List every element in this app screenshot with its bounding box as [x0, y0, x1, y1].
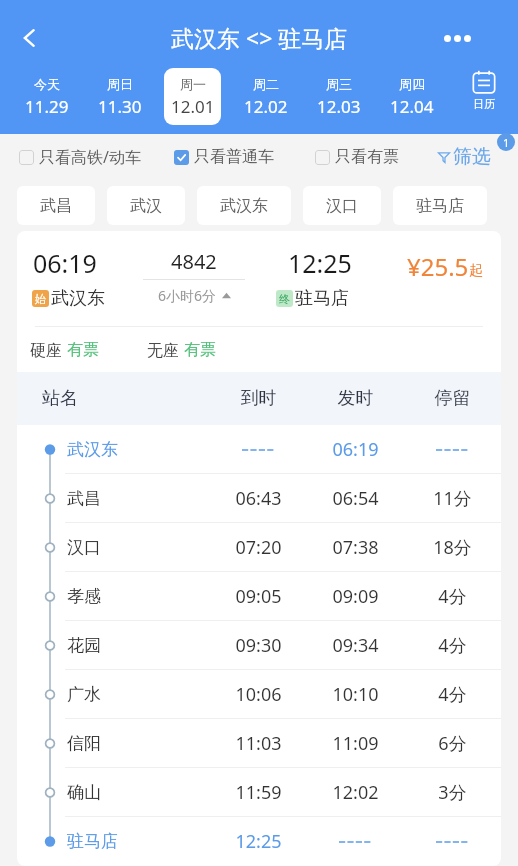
staticText: 06:43 — [210, 486, 307, 511]
staticText: 06:19 — [33, 246, 97, 280]
staticText: 武汉东 — [67, 439, 118, 460]
button[interactable]: 只看有票 — [315, 147, 399, 167]
button[interactable]: 信阳 — [17, 719, 501, 768]
button[interactable]: 只看高铁/动车 — [19, 146, 141, 168]
staticText: 06:54 — [307, 486, 404, 511]
button[interactable]: 只看普通车 — [174, 147, 274, 167]
staticText: 筛选 — [453, 145, 491, 169]
button[interactable]: 孝感 — [17, 572, 501, 621]
staticText: 4分 — [404, 584, 501, 609]
staticText: 周二 — [253, 76, 279, 92]
staticText: 无座 — [147, 339, 184, 361]
staticText: 信阳 — [67, 733, 101, 754]
button[interactable]: 花园 — [17, 621, 501, 670]
button[interactable]: 汉口 — [17, 523, 501, 572]
staticText: 09:30 — [210, 633, 307, 658]
button[interactable]: 筛选 — [438, 145, 518, 169]
staticText: 4分 — [404, 633, 501, 658]
button[interactable]: Calendar — [454, 61, 514, 119]
button[interactable]: 驻马店 — [17, 817, 501, 866]
staticText: 07:38 — [307, 535, 404, 560]
button[interactable]: 周三 — [310, 68, 367, 125]
staticText: 到时 — [210, 387, 307, 410]
button[interactable]: 汉口 — [303, 186, 381, 225]
button[interactable]: Back — [5, 18, 53, 58]
staticText: 4842 — [171, 248, 217, 275]
staticText: 09:09 — [307, 584, 404, 609]
staticText: 日历 — [473, 97, 495, 111]
staticText: 有票 — [184, 340, 216, 360]
staticText: 09:34 — [307, 633, 404, 658]
staticText: 始 — [35, 292, 46, 306]
staticText: 6分 — [404, 731, 501, 756]
button[interactable]: 确山 — [17, 768, 501, 817]
staticText: 11分 — [404, 486, 501, 511]
staticText: 武汉 — [130, 196, 162, 216]
staticText: 停留 — [404, 387, 501, 410]
button[interactable]: 武昌 — [17, 186, 95, 225]
staticText: 12:25 — [210, 829, 307, 854]
staticText: 驻马店 — [295, 287, 349, 310]
staticText: 12.03 — [317, 95, 361, 118]
staticText: 站名 — [42, 387, 210, 410]
staticText: 武汉东 — [51, 287, 105, 310]
button[interactable]: 硬座 — [30, 327, 501, 372]
staticText: 11:03 — [210, 731, 307, 756]
staticText: 1 — [503, 135, 510, 150]
staticText: 武昌 — [40, 196, 72, 216]
staticText: 只看高铁/动车 — [39, 146, 141, 168]
staticText: 武汉东 — [220, 196, 268, 216]
staticText: 周日 — [107, 76, 133, 92]
button[interactable]: 周四 — [383, 68, 440, 125]
staticText: 硬座 — [30, 339, 67, 361]
button[interactable]: 周二 — [237, 68, 294, 125]
staticText: 07:20 — [210, 535, 307, 560]
staticText: 终 — [279, 292, 290, 306]
staticText: 武昌 — [67, 488, 101, 509]
staticText: 有票 — [67, 340, 99, 360]
staticText: 10:10 — [307, 682, 404, 707]
staticText: 6小时6分 — [158, 286, 217, 305]
button[interactable]: 今天 — [18, 68, 75, 125]
staticText: 汉口 — [67, 537, 101, 558]
staticText: 发时 — [307, 387, 404, 410]
staticText: 18分 — [404, 535, 501, 560]
staticText: 11:59 — [210, 780, 307, 805]
staticText: 汉口 — [326, 196, 358, 216]
staticText: 3分 — [404, 780, 501, 805]
staticText: 11:09 — [307, 731, 404, 756]
button[interactable]: 武昌 — [17, 474, 501, 523]
button[interactable]: 武汉东 — [17, 425, 501, 474]
button[interactable]: More options — [433, 18, 481, 58]
button[interactable]: 武汉东 — [197, 186, 291, 225]
staticText: 只看普通车 — [194, 147, 274, 167]
staticText: 10:06 — [210, 682, 307, 707]
staticText: 武汉东 <> 驻马店 — [171, 22, 348, 53]
staticText: 只看有票 — [335, 147, 399, 167]
staticText: 11.29 — [25, 95, 69, 118]
staticText: 12.01 — [171, 95, 215, 118]
staticText: 12:02 — [307, 780, 404, 805]
staticText: 周一 — [180, 76, 206, 92]
staticText: 周三 — [326, 76, 352, 92]
staticText: 12.04 — [390, 95, 434, 118]
button[interactable]: 周一 — [164, 68, 221, 125]
staticText: 今天 — [34, 76, 60, 92]
staticText: 起 — [469, 262, 483, 280]
staticText: ¥25.5 — [407, 250, 469, 283]
button[interactable]: 广水 — [17, 670, 501, 719]
button[interactable]: 武汉 — [107, 186, 185, 225]
staticText: 广水 — [67, 684, 101, 705]
button[interactable]: 驻马店 — [393, 186, 487, 225]
button[interactable]: 06:19 — [17, 231, 501, 326]
button[interactable]: 周日 — [91, 68, 148, 125]
staticText: 驻马店 — [416, 196, 464, 216]
staticText: 06:19 — [307, 437, 404, 462]
staticText: 周四 — [399, 76, 425, 92]
staticText: 09:05 — [210, 584, 307, 609]
staticText: 驻马店 — [67, 831, 118, 852]
staticText: 确山 — [67, 782, 101, 803]
staticText: 11.30 — [98, 95, 142, 118]
staticText: 12.02 — [244, 95, 288, 118]
staticText: 4分 — [404, 682, 501, 707]
